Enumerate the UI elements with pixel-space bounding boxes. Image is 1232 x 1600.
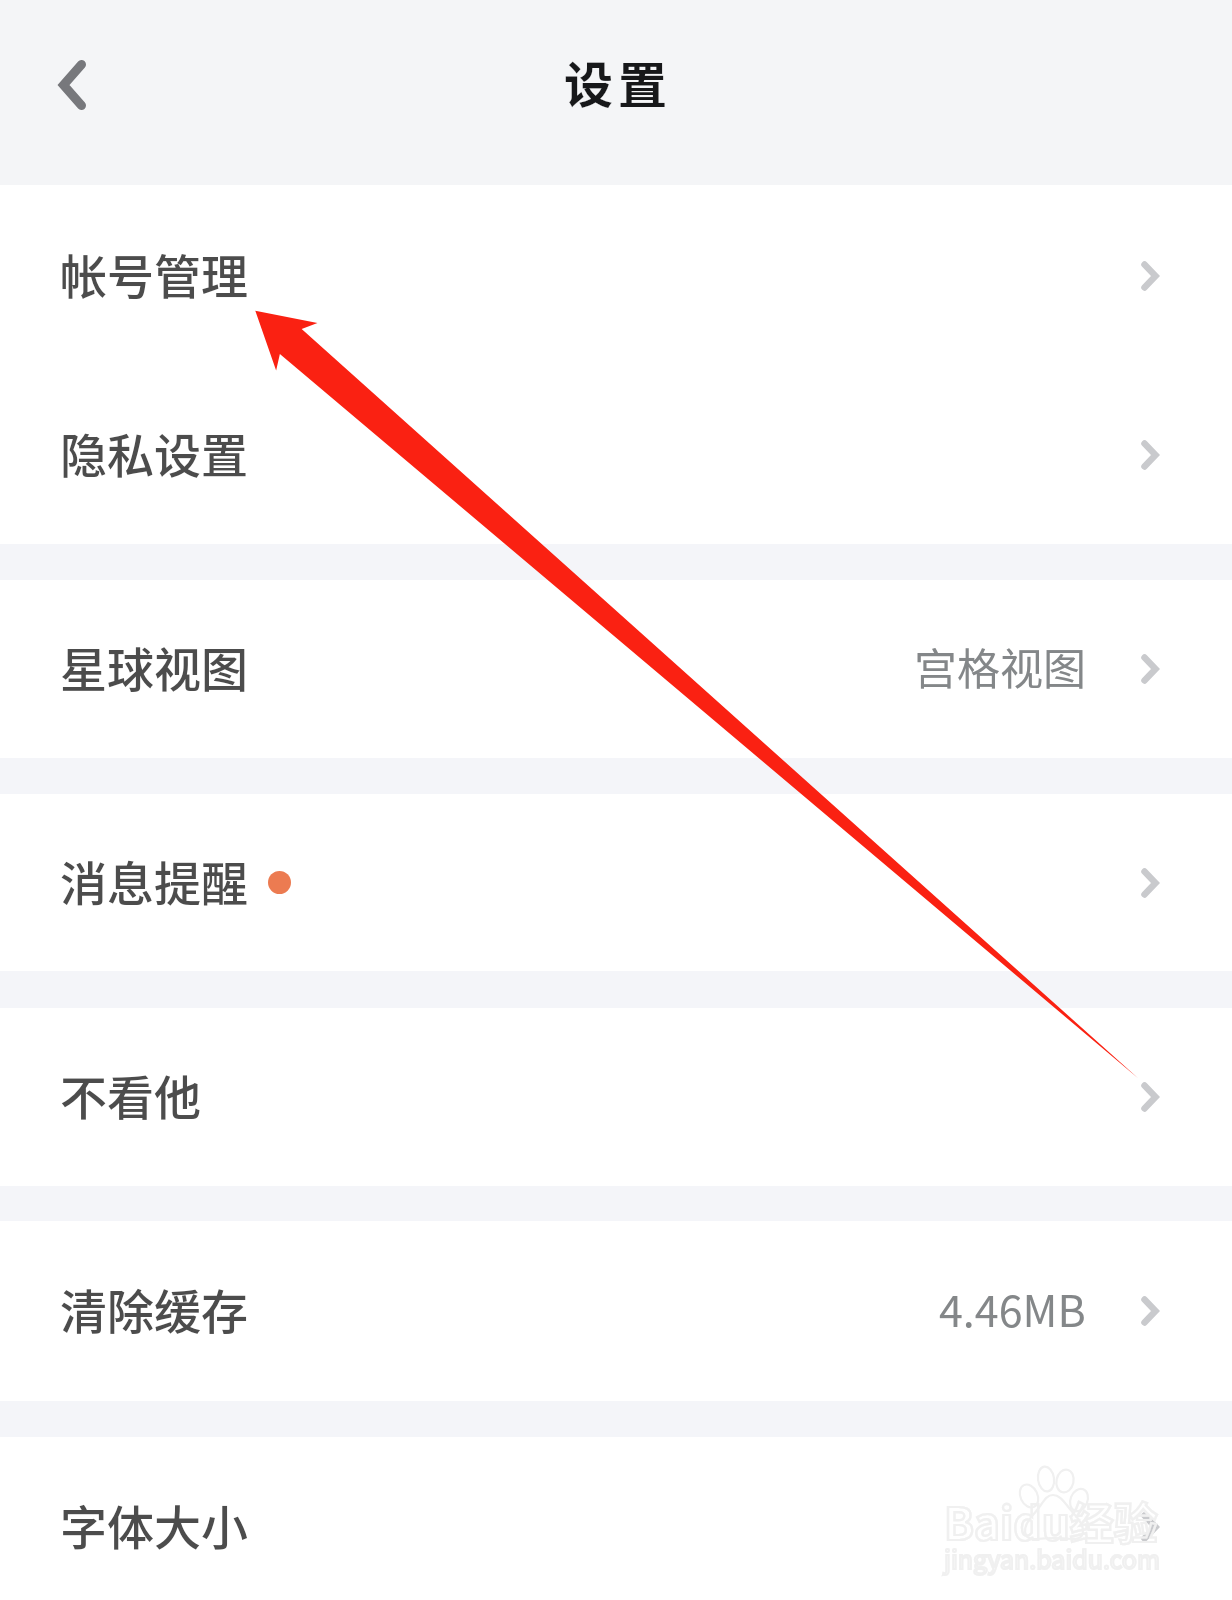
staticText: 清除缓存 — [60, 1274, 248, 1342]
staticText: 设置 — [564, 46, 673, 117]
staticText: 隐私设置 — [60, 418, 248, 486]
button[interactable]: 帐号管理 — [0, 185, 1232, 366]
staticText: 4.46MB — [939, 1277, 1086, 1339]
button[interactable]: 消息提醒 — [0, 794, 1232, 971]
staticText: 宫格视图 — [914, 635, 1086, 697]
button[interactable]: 字体大小 — [0, 1437, 1232, 1600]
button[interactable]: 星球视图 — [0, 580, 1232, 758]
staticText: 消息提醒 — [60, 846, 248, 914]
staticText: jingyan.baidu.com — [944, 1540, 1161, 1576]
button[interactable]: 不看他 — [0, 1008, 1232, 1186]
staticText: 不看他 — [60, 1060, 201, 1128]
button[interactable]: 清除缓存 — [0, 1221, 1232, 1401]
button[interactable]: 隐私设置 — [0, 366, 1232, 544]
staticText: 帐号管理 — [60, 239, 248, 307]
staticText: Baidu经验 — [944, 1489, 1158, 1553]
button[interactable]: Back — [32, 45, 112, 125]
staticText: 星球视图 — [60, 632, 248, 700]
staticText: 字体大小 — [60, 1490, 248, 1558]
